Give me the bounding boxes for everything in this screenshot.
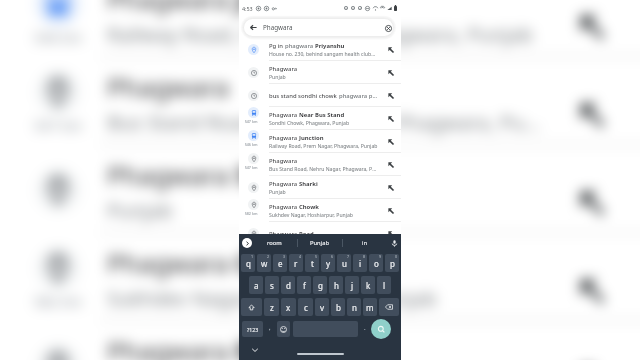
- button[interactable]: Voice input: [387, 234, 401, 252]
- button[interactable]: More suggestions: [242, 238, 252, 248]
- staticText: d: [286, 280, 291, 291]
- button[interactable]: Use this suggestion: [380, 84, 401, 107]
- staticText: 5: [315, 254, 318, 259]
- button[interactable]: r: [289, 254, 303, 272]
- button[interactable]: d: [281, 276, 295, 294]
- staticText: bus stand sondhi chowk: [269, 92, 339, 100]
- staticText: Punjab: [310, 239, 329, 247]
- button[interactable]: v: [315, 298, 329, 316]
- staticText: x: [286, 302, 291, 313]
- staticText: Punjab: [107, 197, 173, 224]
- button[interactable]: c: [298, 298, 313, 316]
- button[interactable]: 547 km: [239, 107, 401, 130]
- staticText: 547 km: [243, 165, 259, 170]
- button[interactable]: Use this suggestion: [380, 130, 401, 153]
- button[interactable]: Use this suggestion: [380, 153, 401, 176]
- staticText: a: [254, 280, 259, 291]
- button[interactable]: Use this suggestion: [380, 176, 401, 199]
- button[interactable]: g: [313, 276, 327, 294]
- staticText: 9: [379, 254, 382, 259]
- staticText: 4: [299, 254, 302, 259]
- button[interactable]: k: [361, 276, 375, 294]
- staticText: y: [326, 258, 331, 269]
- button[interactable]: in: [342, 234, 387, 252]
- button[interactable]: Punjab: [297, 234, 342, 252]
- button[interactable]: t: [305, 254, 319, 272]
- button[interactable]: 582 km: [239, 199, 401, 222]
- staticText: k: [366, 280, 371, 291]
- button[interactable]: Hide keyboard: [251, 346, 259, 354]
- staticText: Phagwara: [269, 134, 299, 142]
- button[interactable]: Use this suggestion: [380, 199, 401, 222]
- button[interactable]: x: [281, 298, 296, 316]
- button[interactable]: .: [358, 318, 371, 340]
- button[interactable]: Use this suggestion: [380, 61, 401, 84]
- staticText: Priyanshu: [315, 42, 345, 50]
- button[interactable]: Search: [371, 319, 391, 339]
- staticText: 547 km: [34, 116, 83, 135]
- button[interactable]: o: [369, 254, 383, 272]
- staticText: e: [278, 258, 283, 269]
- button[interactable]: 546 km: [239, 130, 401, 153]
- staticText: Phagwara: [107, 69, 230, 104]
- button[interactable]: Shift: [241, 298, 262, 316]
- staticText: Phagwara: [107, 333, 236, 360]
- button[interactable]: Clear search: [383, 23, 393, 33]
- button[interactable]: j: [345, 276, 359, 294]
- staticText: Sukhdev Nagar, Hoshiarpur, Punjab: [269, 212, 353, 219]
- staticText: u: [342, 258, 347, 269]
- button[interactable]: w: [257, 254, 271, 272]
- button[interactable]: Pg in: [239, 38, 401, 61]
- button[interactable]: Backspace: [379, 298, 399, 316]
- staticText: p: [390, 258, 395, 269]
- staticText: Phagwara: [269, 65, 298, 73]
- button[interactable]: 547 km: [239, 153, 401, 176]
- button[interactable]: p: [385, 254, 399, 272]
- button[interactable]: Use this suggestion: [380, 38, 401, 61]
- staticText: House no. 230, behind sangam health club…: [269, 51, 376, 58]
- button[interactable]: s: [265, 276, 279, 294]
- button[interactable]: a: [249, 276, 263, 294]
- staticText: 546 km: [34, 28, 83, 47]
- button[interactable]: Emoji: [277, 321, 290, 337]
- button[interactable]: Phagwara: [239, 61, 401, 84]
- button[interactable]: Use this suggestion: [380, 107, 401, 130]
- staticText: 3: [283, 254, 286, 259]
- button[interactable]: room: [252, 234, 297, 252]
- staticText: 546 km: [243, 142, 259, 147]
- button[interactable]: e: [273, 254, 287, 272]
- button[interactable]: f: [297, 276, 311, 294]
- button[interactable]: bus stand sondhi chowk: [239, 84, 401, 107]
- button[interactable]: u: [337, 254, 351, 272]
- button[interactable]: i: [353, 254, 367, 272]
- staticText: Bus Stand Road, Nehru Nagar, Phagwara, P…: [107, 109, 541, 136]
- button[interactable]: b: [331, 298, 345, 316]
- button[interactable]: Back: [244, 19, 393, 36]
- button[interactable]: ,: [263, 318, 277, 340]
- staticText: 582 km: [243, 211, 259, 216]
- staticText: Punjab: [269, 189, 286, 196]
- button[interactable]: Back: [250, 24, 257, 31]
- button[interactable]: z: [264, 298, 279, 316]
- button[interactable]: y: [321, 254, 335, 272]
- staticText: Sharki: [299, 180, 318, 188]
- staticText: 6: [331, 254, 334, 259]
- staticText: Phagwara: [269, 180, 299, 188]
- staticText: Phagwara: [107, 245, 236, 280]
- button[interactable]: Phagwara: [239, 176, 401, 199]
- button[interactable]: Phagwara: [239, 222, 401, 245]
- staticText: j: [351, 280, 354, 291]
- staticText: Phagwara: [269, 111, 299, 119]
- button[interactable]: m: [363, 298, 377, 316]
- button[interactable]: n: [347, 298, 361, 316]
- button[interactable]: Use this suggestion: [380, 222, 401, 245]
- button[interactable]: q: [241, 254, 255, 272]
- button[interactable]: ?123: [242, 321, 263, 337]
- staticText: o: [374, 258, 379, 269]
- staticText: Railway Road, Prem Nagar, Phagwara, Punj…: [269, 143, 378, 150]
- button[interactable]: h: [329, 276, 343, 294]
- button[interactable]: l: [377, 276, 391, 294]
- staticText: Junction: [236, 0, 345, 16]
- staticText: h: [334, 280, 339, 291]
